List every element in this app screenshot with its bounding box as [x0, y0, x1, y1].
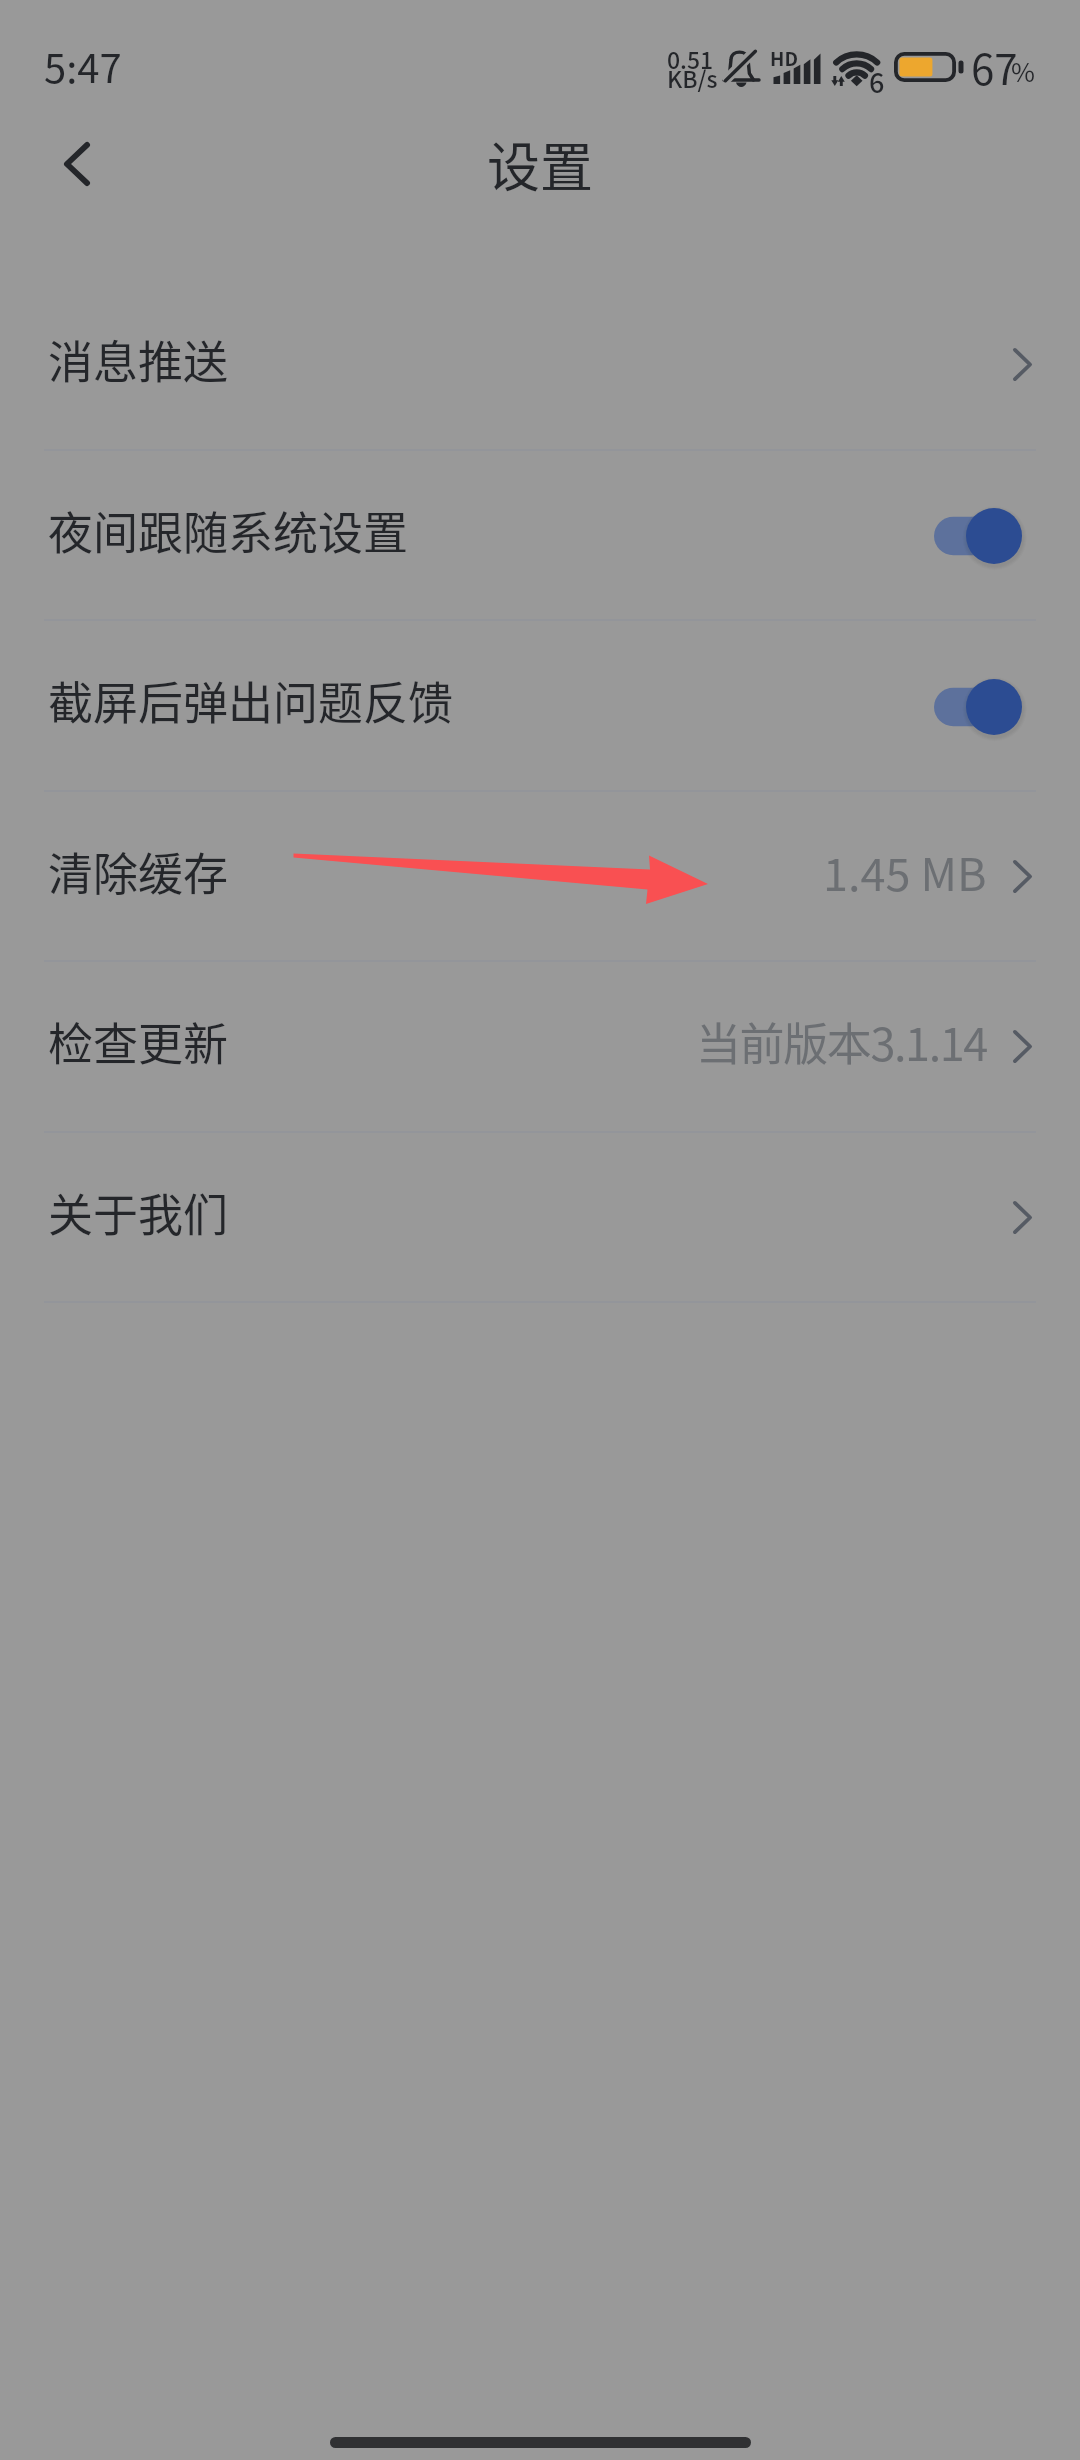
button[interactable]: Home: [330, 2437, 751, 2448]
staticText: 5:47: [44, 37, 122, 95]
staticText: 截屏后弹出问题反馈: [48, 668, 454, 733]
button[interactable]: 检查更新: [0, 962, 1080, 1133]
staticText: 6: [869, 62, 885, 101]
staticText: 67: [971, 36, 1018, 97]
staticText: KB/s: [667, 61, 718, 94]
staticText: 当前版本3.1.14: [696, 1009, 987, 1074]
staticText: 清除缓存: [48, 839, 229, 904]
button[interactable]: 关于我们: [0, 1133, 1080, 1303]
staticText: 消息推送: [48, 327, 229, 392]
staticText: 检查更新: [48, 1009, 229, 1074]
button[interactable]: 清除缓存: [0, 792, 1080, 962]
staticText: 设置: [487, 126, 593, 203]
button[interactable]: 截屏后弹出问题反馈: [0, 621, 1080, 792]
button[interactable]: [934, 505, 1032, 567]
button[interactable]: 夜间跟随系统设置: [0, 451, 1080, 621]
staticText: 关于我们: [48, 1180, 229, 1245]
staticText: 1.45 MB: [823, 839, 987, 904]
staticText: %: [1011, 52, 1035, 90]
staticText: 夜间跟随系统设置: [48, 498, 409, 563]
button[interactable]: Back: [33, 120, 121, 208]
staticText: 0.51: [667, 42, 714, 75]
button[interactable]: 消息推送: [0, 280, 1080, 451]
staticText: HD: [770, 44, 798, 72]
button[interactable]: [934, 676, 1032, 738]
